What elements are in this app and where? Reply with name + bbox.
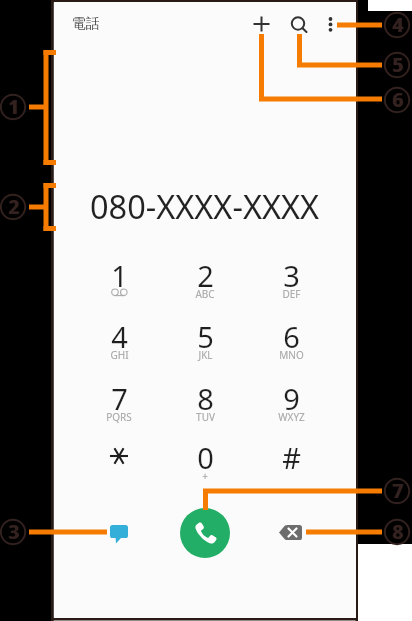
button[interactable] xyxy=(81,252,157,304)
staticText: 0 xyxy=(197,438,214,470)
staticText: 7 xyxy=(393,478,404,504)
staticText: 9 xyxy=(283,379,300,411)
staticText: 7 xyxy=(392,478,403,504)
staticText: WXYZ xyxy=(278,410,305,424)
staticText: 2 xyxy=(8,194,19,220)
button[interactable] xyxy=(81,434,157,486)
staticText: + xyxy=(202,469,208,483)
staticText: 6 xyxy=(393,87,404,113)
staticText: 5 xyxy=(392,52,403,78)
button[interactable] xyxy=(253,375,329,427)
staticText: 7 xyxy=(111,379,128,411)
staticText: 5 xyxy=(393,52,404,78)
staticText: 5 xyxy=(197,317,214,349)
button[interactable] xyxy=(253,313,329,365)
staticText: 6 xyxy=(392,87,403,113)
button[interactable] xyxy=(81,313,157,365)
button[interactable]: Message xyxy=(104,518,136,548)
staticText: 6 xyxy=(283,317,300,349)
staticText: 4 xyxy=(392,12,403,38)
button[interactable] xyxy=(253,434,329,486)
staticText: 電話 xyxy=(72,15,100,33)
button[interactable] xyxy=(167,313,243,365)
staticText: TUV xyxy=(196,410,215,424)
staticText: 8 xyxy=(197,379,214,411)
staticText: # xyxy=(282,438,301,470)
staticText: 3 xyxy=(283,256,300,288)
staticText: 2 xyxy=(197,256,214,288)
button[interactable] xyxy=(167,434,243,486)
button[interactable] xyxy=(167,375,243,427)
staticText: PQRS xyxy=(106,410,132,424)
button[interactable]: More options xyxy=(319,8,343,40)
staticText: GHI xyxy=(110,348,129,362)
staticText: 1 xyxy=(9,94,20,120)
staticText: 4 xyxy=(393,12,404,38)
staticText: 4 xyxy=(111,317,128,349)
staticText: 080-XXXX-XXXX xyxy=(90,184,320,228)
staticText: 3 xyxy=(9,519,20,545)
button[interactable]: Search xyxy=(283,8,315,40)
button[interactable]: 電話 xyxy=(72,15,100,33)
staticText: MNO xyxy=(279,348,304,362)
staticText: DEF xyxy=(282,287,301,301)
staticText: 8 xyxy=(393,519,404,545)
staticText: 2 xyxy=(9,194,20,220)
button[interactable]: Call xyxy=(180,508,230,558)
staticText: 1 xyxy=(111,256,128,288)
button[interactable]: Add contact xyxy=(245,8,278,40)
button[interactable] xyxy=(253,252,329,304)
staticText: JKL xyxy=(198,348,213,362)
button[interactable]: Backspace xyxy=(275,518,307,548)
button[interactable] xyxy=(81,375,157,427)
button[interactable] xyxy=(167,252,243,304)
staticText: 3 xyxy=(8,519,19,545)
staticText: ABC xyxy=(195,287,215,301)
staticText: 8 xyxy=(392,519,403,545)
staticText: 1 xyxy=(8,94,19,120)
